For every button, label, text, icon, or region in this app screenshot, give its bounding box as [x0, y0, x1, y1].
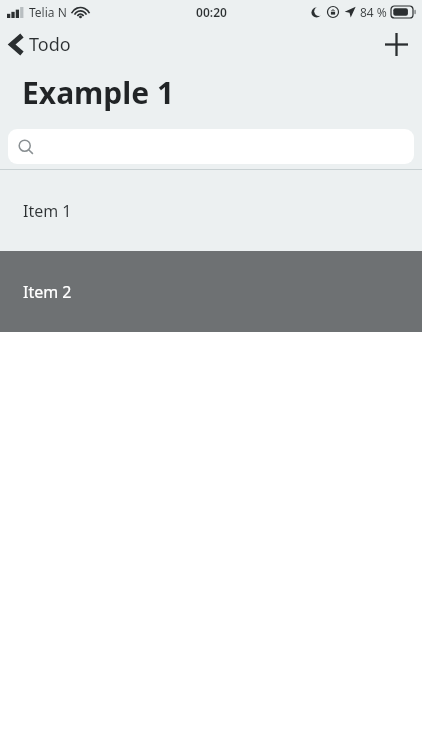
staticText: Example 1	[22, 72, 175, 113]
staticText: Item 2	[23, 281, 72, 303]
staticText: 00:20	[196, 4, 227, 20]
button[interactable]: Item 2	[0, 251, 422, 332]
button[interactable]: Todo	[0, 27, 83, 62]
staticText: Telia N	[29, 4, 67, 20]
staticText: Todo	[29, 32, 71, 57]
staticText: 84 %	[360, 4, 387, 20]
button[interactable]: Item 1	[0, 170, 422, 251]
staticText: Item 1	[23, 200, 72, 222]
button[interactable]	[8, 129, 414, 164]
button[interactable]: Add	[371, 27, 422, 62]
